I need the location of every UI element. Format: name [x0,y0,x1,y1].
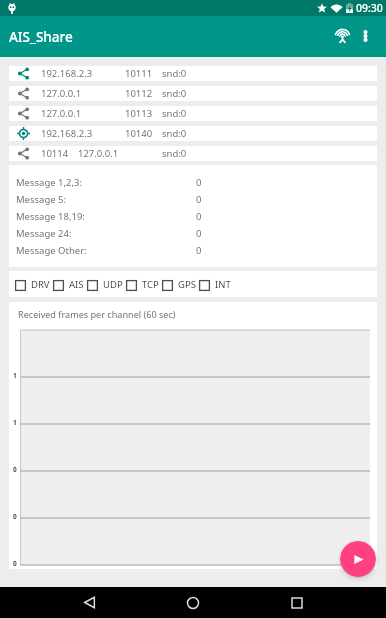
button[interactable]: More options [346,18,384,56]
staticText: 09:30 [356,1,383,15]
button[interactable]: Broadcast [320,18,346,56]
button[interactable]: DRV [15,278,53,291]
staticText: 192.168.2.3 [41,67,125,80]
staticText: 10113 [125,107,162,120]
staticText: 1 [13,371,17,380]
staticText: snd:0 [162,147,187,160]
button[interactable]: GPS [162,278,199,291]
button[interactable]: 192.168.2.3 [9,66,377,81]
staticText: Message Other: [16,244,196,257]
staticText: Message 5: [16,193,196,206]
staticText: UDP [103,278,123,291]
staticText: 0 [13,559,17,568]
button[interactable]: Recents [277,587,317,618]
staticText: snd:0 [162,127,187,140]
button[interactable]: INT [199,278,234,291]
staticText: 0 [196,193,202,206]
staticText: 10111 [125,67,162,80]
button[interactable]: AIS [53,278,87,291]
staticText: 0 [13,465,17,474]
button[interactable]: 192.168.2.3 [9,126,377,141]
staticText: 0 [196,227,202,240]
button[interactable]: 10114 [9,146,377,161]
staticText: 0 [13,512,17,521]
staticText: TCP [142,278,159,291]
staticText: Message 24: [16,227,196,240]
button[interactable]: 127.0.0.1 [9,106,377,121]
staticText: Message 1,2,3: [16,176,196,189]
staticText: Received frames per channel (60 sec) [18,308,176,320]
staticText: GPS [178,278,196,291]
staticText: snd:0 [162,67,187,80]
button[interactable]: 127.0.0.1 [9,86,377,101]
button[interactable]: UDP [87,278,126,291]
button[interactable]: TCP [126,278,162,291]
staticText: 10114 [41,147,78,160]
staticText: 127.0.0.1 [41,107,125,120]
button[interactable]: Home [173,587,213,618]
staticText: snd:0 [162,87,187,100]
staticText: 192.168.2.3 [41,127,125,140]
staticText: 0 [196,210,202,223]
button[interactable]: Start [340,541,376,577]
staticText: 127.0.0.1 [78,147,162,160]
staticText: AIS_Share [9,28,73,46]
staticText: DRV [31,278,50,291]
staticText: 0 [196,176,202,189]
staticText: 10112 [125,87,162,100]
staticText: 127.0.0.1 [41,87,125,100]
button[interactable]: Back [69,587,109,618]
staticText: 10140 [125,127,162,140]
staticText: Message 18,19: [16,210,196,223]
staticText: 0 [196,244,202,257]
staticText: INT [215,278,231,291]
staticText: snd:0 [162,107,187,120]
staticText: AIS [69,278,84,291]
staticText: 1 [13,418,17,427]
